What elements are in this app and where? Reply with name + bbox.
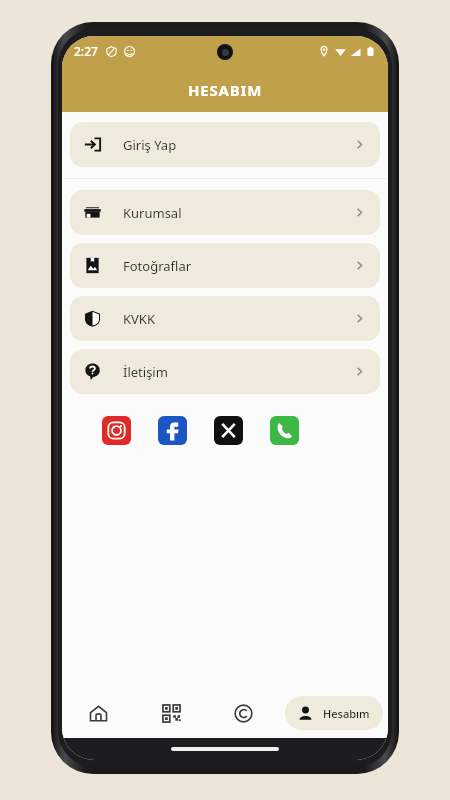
button[interactable]: Instagram [102, 416, 131, 445]
button[interactable]: Facebook [158, 416, 187, 445]
button[interactable]: Kurumsal [70, 190, 380, 235]
button[interactable]: QR Code [135, 688, 207, 738]
button[interactable]: İletişim [70, 349, 380, 394]
button[interactable]: Home [62, 688, 135, 738]
button[interactable]: KVKK [70, 296, 380, 341]
button[interactable]: WhatsApp [270, 416, 299, 445]
button[interactable]: Hesabım [285, 696, 383, 730]
button[interactable]: Fotoğraflar [70, 243, 380, 288]
staticText: Giriş Yap [123, 136, 177, 154]
staticText: KVKK [123, 310, 155, 328]
staticText: HESABIM [188, 80, 263, 100]
staticText: Hesabım [323, 706, 370, 721]
button[interactable]: Giriş Yap [70, 122, 380, 167]
button[interactable]: X [214, 416, 243, 445]
staticText: İletişim [123, 363, 168, 381]
staticText: Fotoğraflar [123, 257, 192, 275]
button[interactable]: Copyright [207, 688, 279, 738]
staticText: 2:27 [74, 43, 98, 59]
staticText: Kurumsal [123, 204, 182, 222]
